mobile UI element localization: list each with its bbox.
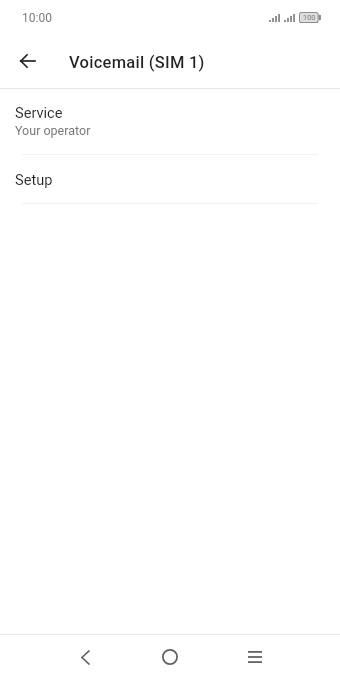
button[interactable]: Recent apps [212,634,297,680]
staticText: 10:00 [22,11,52,25]
staticText: Voicemail (SIM 1) [69,53,205,72]
button[interactable]: Back [43,634,127,680]
staticText: Service [15,104,63,121]
button[interactable]: Service [0,89,340,154]
staticText: Your operator [15,123,91,138]
staticText: 100 [303,13,316,22]
button[interactable]: Back [7,41,47,81]
button[interactable]: Setup [0,155,340,203]
button[interactable]: Home [127,634,212,680]
staticText: Setup [15,171,53,188]
